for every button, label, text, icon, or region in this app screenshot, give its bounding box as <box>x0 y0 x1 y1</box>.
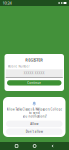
button[interactable]: Recent apps <box>15 145 18 147</box>
staticText: Allow Tadka Classes & Wallpapers College… <box>6 108 62 118</box>
button[interactable]: Back <box>51 144 54 148</box>
staticText: XXXXX XXXXX <box>24 71 45 75</box>
button[interactable]: Allow <box>6 121 62 127</box>
button[interactable]: Don't allow <box>6 128 62 135</box>
staticText: Mobile Number <box>7 65 29 68</box>
staticText: Allow <box>30 122 38 126</box>
button[interactable]: Continue <box>7 80 61 85</box>
staticText: REGISTER <box>25 57 43 62</box>
button[interactable]: Home <box>33 144 36 147</box>
staticText: Don't allow <box>26 130 43 133</box>
staticText: Continue <box>27 81 41 85</box>
staticText: 10:24 <box>2 0 11 6</box>
